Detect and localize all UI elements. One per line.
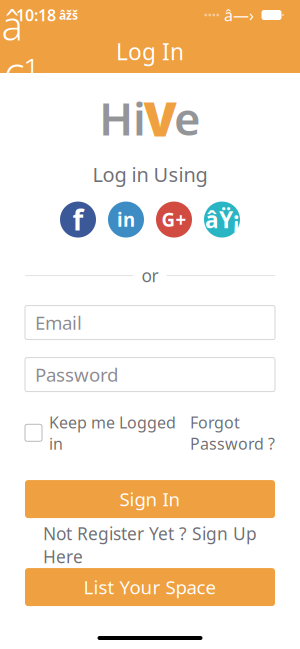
staticText: Forgot Password ?: [190, 412, 275, 454]
button[interactable]: Email: [25, 306, 275, 340]
staticText: Sign In: [119, 487, 180, 511]
staticText: V: [143, 86, 176, 150]
button[interactable]: Not Register Yet ? Sign Up Here: [25, 532, 275, 558]
staticText: List Your Space: [83, 575, 216, 599]
staticText: âŸ¡: [205, 204, 239, 235]
staticText: Password: [35, 362, 118, 387]
button[interactable]: Sign In: [25, 480, 275, 518]
staticText: Log In: [116, 36, 184, 66]
staticText: Hi: [99, 88, 146, 148]
staticText: â€¹: [1, 0, 38, 105]
button[interactable]: Sign in with Google: [156, 202, 192, 238]
staticText: Keep me Logged in: [49, 412, 176, 454]
button[interactable]: List Your Space: [25, 568, 275, 606]
button[interactable]: Keep me Logged in: [25, 412, 176, 454]
staticText: Email: [35, 310, 82, 335]
staticText: Log in Using: [92, 161, 207, 188]
staticText: âžš: [59, 7, 78, 23]
button[interactable]: Back: [0, 31, 40, 71]
button[interactable]: Sign in with Twitter: [204, 202, 240, 238]
button[interactable]: Sign in with LinkedIn: [108, 202, 144, 238]
button[interactable]: Sign in with Facebook: [60, 202, 96, 238]
staticText: Not Register Yet ? Sign Up Here: [43, 522, 257, 568]
button[interactable]: Password: [25, 358, 275, 392]
staticText: G+: [161, 207, 186, 232]
staticText: or: [141, 264, 158, 287]
staticText: f: [72, 201, 83, 238]
button[interactable]: Forgot Password ?: [190, 412, 275, 454]
staticText: e: [174, 88, 201, 148]
staticText: 10:18: [16, 4, 56, 26]
staticText: â—›: [224, 4, 254, 26]
staticText: in: [117, 207, 135, 232]
